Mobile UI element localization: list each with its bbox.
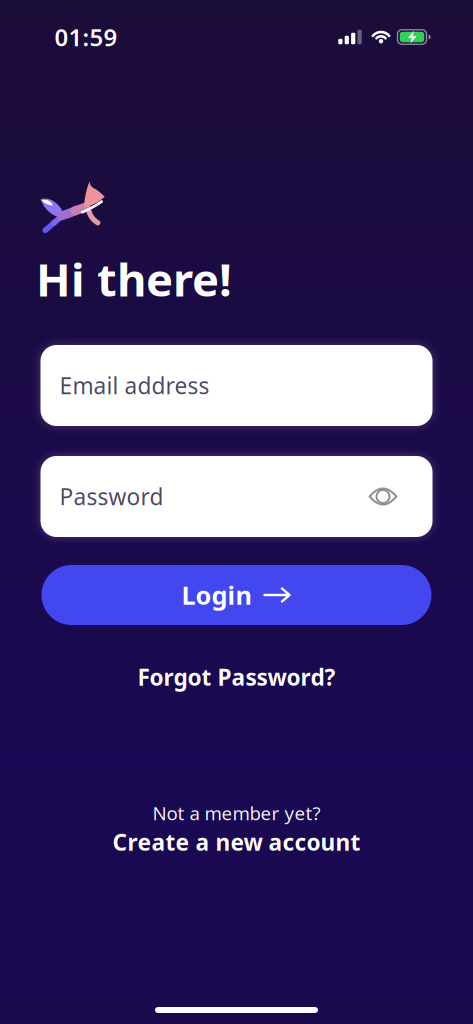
button[interactable]: Login [41, 565, 431, 625]
button[interactable]: Create a new account [112, 827, 360, 857]
button[interactable]: Email address [40, 345, 432, 426]
staticText: Not a member yet? [152, 801, 320, 825]
staticText: Email address [59, 370, 209, 400]
staticText: Forgot Password? [137, 662, 335, 692]
staticText: Password [59, 481, 163, 511]
button[interactable]: Show password [359, 472, 407, 520]
staticText: 01:59 [54, 21, 117, 53]
button[interactable]: Password [40, 456, 432, 537]
staticText: Login [181, 578, 251, 612]
staticText: Create a new account [112, 827, 360, 857]
staticText: Hi there! [36, 249, 232, 309]
button[interactable]: Forgot Password? [137, 662, 335, 692]
